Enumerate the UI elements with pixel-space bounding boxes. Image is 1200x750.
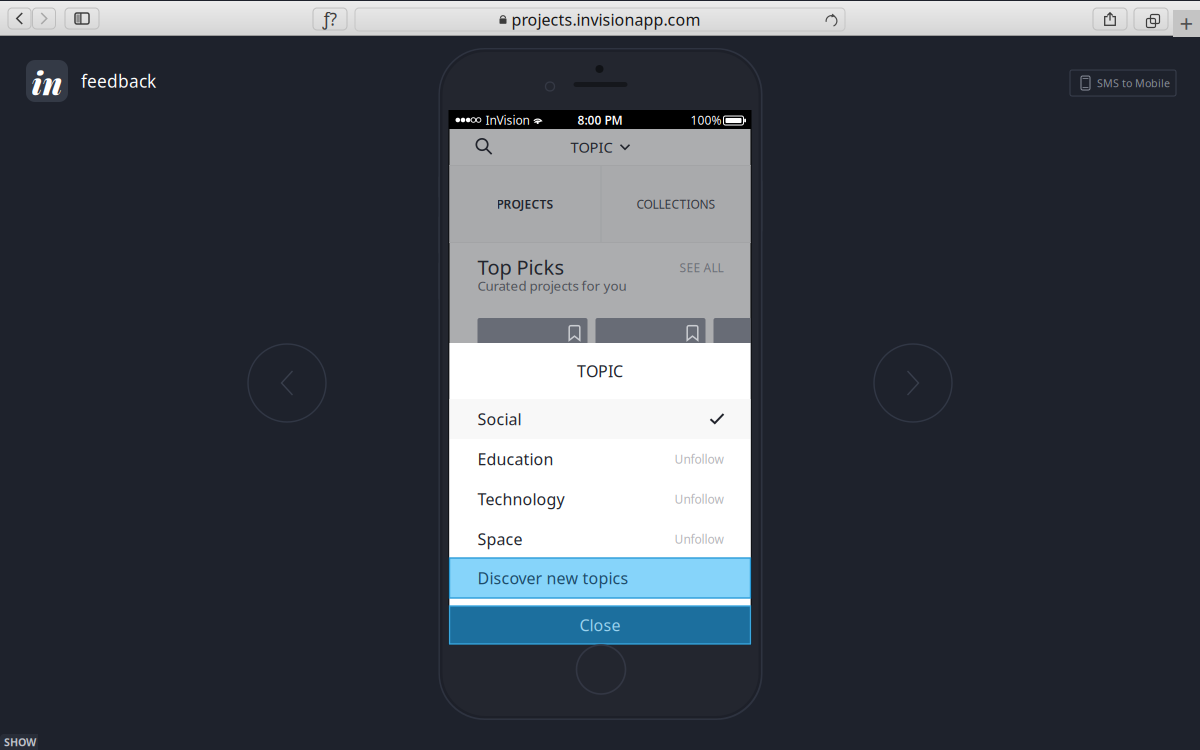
- staticText: SMS to Mobile: [1097, 76, 1170, 90]
- staticText: Unfollow: [674, 451, 723, 467]
- staticText: projects.invisionapp.com: [511, 9, 700, 30]
- button[interactable]: Forward: [32, 8, 55, 29]
- staticText: +: [1179, 8, 1193, 39]
- button[interactable]: SHOW: [0, 734, 38, 750]
- button[interactable]: Share: [1093, 8, 1127, 30]
- button[interactable]: Website settings: [313, 8, 347, 30]
- staticText: 100%: [690, 112, 721, 128]
- staticText: Space: [477, 528, 522, 550]
- staticText: Unfollow: [674, 531, 723, 547]
- staticText: Technology: [477, 488, 564, 510]
- button[interactable]: Social: [449, 399, 750, 439]
- button[interactable]: Address bar: [355, 8, 845, 31]
- staticText: Curated projects for you: [477, 277, 626, 294]
- staticText: TOPIC: [570, 137, 612, 157]
- staticText: Top Picks: [477, 254, 564, 280]
- staticText: PROJECTS: [496, 196, 553, 212]
- staticText: Education: [477, 448, 553, 470]
- button[interactable]: New tab: [1173, 10, 1200, 37]
- button[interactable]: Back: [8, 8, 31, 29]
- staticText: in: [31, 61, 62, 103]
- button[interactable]: Previous screen: [248, 344, 326, 422]
- staticText: InVision: [485, 112, 529, 128]
- button[interactable]: SMS to Mobile: [1070, 70, 1176, 96]
- button[interactable]: Education: [449, 439, 750, 479]
- button[interactable]: Technology: [449, 479, 750, 519]
- staticText: SHOW: [4, 735, 36, 749]
- staticText: 8:00 PM: [577, 112, 622, 128]
- staticText: COLLECTIONS: [636, 196, 715, 212]
- button[interactable]: Reload: [822, 11, 842, 31]
- staticText: TOPIC: [577, 360, 623, 382]
- staticText: Unfollow: [674, 491, 723, 507]
- staticText: Discover new topics: [477, 567, 628, 589]
- staticText: Close: [579, 614, 620, 636]
- staticText: ƒ?: [322, 7, 337, 30]
- button[interactable]: Discover new topics: [449, 558, 750, 598]
- staticText: SEE ALL: [679, 259, 723, 275]
- staticText: Social: [477, 408, 521, 430]
- button[interactable]: InVision: [26, 60, 68, 102]
- button[interactable]: Show sidebar: [65, 8, 99, 29]
- button[interactable]: Next screen: [874, 344, 952, 422]
- staticText: feedback: [81, 69, 156, 92]
- button[interactable]: Close: [449, 606, 750, 644]
- button[interactable]: Space: [449, 519, 750, 559]
- button[interactable]: Show tab overview: [1134, 8, 1168, 30]
